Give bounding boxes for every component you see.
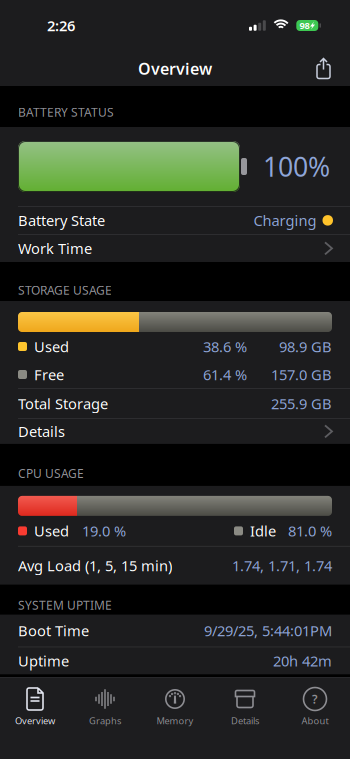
- staticText: Total Storage: [18, 394, 108, 413]
- staticText: 20h 42m: [273, 651, 332, 671]
- staticText: Uptime: [18, 651, 69, 671]
- staticText: Memory: [156, 714, 193, 727]
- button[interactable]: Overview: [0, 686, 70, 727]
- staticText: 98.9 GB: [279, 337, 332, 356]
- staticText: STORAGE USAGE: [18, 282, 112, 298]
- staticText: SYSTEM UPTIME: [18, 597, 112, 613]
- staticText: 255.9 GB: [271, 394, 332, 413]
- staticText: ?: [312, 691, 318, 707]
- staticText: 100%: [263, 149, 330, 184]
- staticText: Used: [34, 521, 69, 541]
- staticText: Charging: [253, 211, 316, 230]
- button[interactable]: Details: [210, 686, 280, 727]
- staticText: 61.4 %: [203, 365, 247, 384]
- staticText: 98: [300, 19, 310, 32]
- staticText: BATTERY STATUS: [18, 104, 114, 120]
- staticText: Graphs: [89, 714, 121, 727]
- staticText: Details: [231, 714, 259, 727]
- staticText: 2:26: [47, 16, 75, 35]
- staticText: Work Time: [18, 239, 92, 258]
- staticText: 1.74, 1.71, 1.74: [232, 556, 332, 575]
- button[interactable]: Details: [0, 419, 350, 444]
- staticText: Boot Time: [18, 621, 89, 640]
- staticText: Used: [34, 337, 69, 356]
- button[interactable]: ?: [280, 686, 350, 727]
- staticText: Overview: [138, 58, 212, 79]
- button[interactable]: Work Time: [0, 235, 350, 262]
- button[interactable]: Share: [315, 57, 350, 79]
- staticText: Free: [34, 365, 64, 384]
- staticText: Battery State: [18, 211, 105, 230]
- button[interactable]: Graphs: [70, 686, 140, 727]
- staticText: Avg Load (1, 5, 15 min): [18, 556, 172, 575]
- staticText: 9/29/25, 5:44:01PM: [204, 621, 332, 640]
- staticText: About: [301, 714, 328, 727]
- staticText: 38.6 %: [203, 337, 247, 356]
- button[interactable]: Memory: [140, 686, 210, 727]
- staticText: Overview: [15, 714, 55, 727]
- staticText: 81.0 %: [288, 521, 332, 541]
- staticText: 157.0 GB: [271, 365, 332, 384]
- staticText: 19.0 %: [82, 521, 126, 541]
- staticText: Details: [18, 422, 65, 441]
- staticText: Idle: [250, 521, 276, 541]
- staticText: CPU USAGE: [18, 465, 84, 481]
